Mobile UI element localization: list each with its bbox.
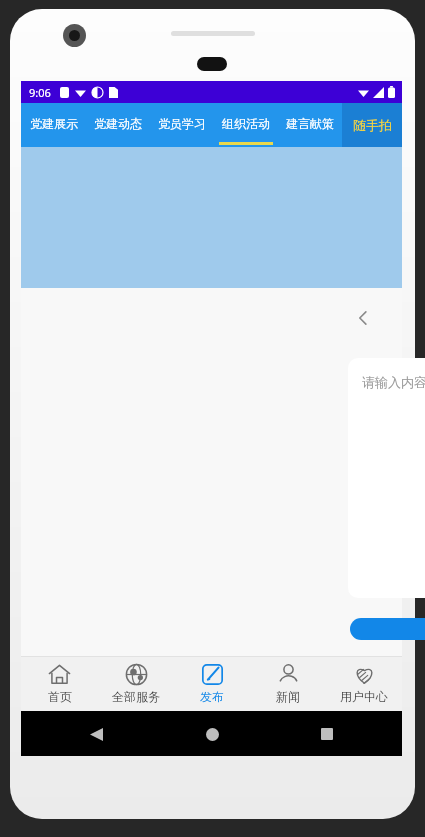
staticText: 随手拍 [353, 117, 392, 133]
staticText: 用户中心 [340, 689, 388, 704]
button[interactable]: Home [197, 719, 227, 749]
button[interactable]: Recents [312, 719, 342, 749]
button[interactable]: 党员学习 [150, 103, 214, 147]
button[interactable] [350, 618, 425, 640]
button[interactable]: 组织活动 [214, 103, 278, 147]
staticText: 9:06 [29, 85, 51, 100]
staticText: 建言献策 [286, 116, 334, 131]
button[interactable]: 首页 [21, 656, 98, 711]
button[interactable]: Back [81, 719, 111, 749]
staticText: 党建展示 [30, 116, 78, 131]
staticText: 新闻 [276, 689, 300, 704]
button[interactable]: 用户中心 [326, 656, 402, 711]
button[interactable]: 党建展示 [21, 103, 86, 147]
button[interactable]: 新闻 [250, 656, 326, 711]
staticText: 组织活动 [222, 116, 270, 131]
staticText: 党员学习 [158, 116, 206, 131]
button[interactable]: 建言献策 [278, 103, 342, 147]
button[interactable]: 全部服务 [98, 656, 174, 711]
button[interactable]: 请输入内容 [348, 358, 425, 598]
staticText: 请输入内容 [362, 374, 425, 390]
button[interactable]: 随手拍 [342, 103, 402, 147]
staticText: 首页 [48, 689, 72, 704]
staticText: 发布 [200, 689, 224, 704]
button[interactable]: 党建动态 [86, 103, 150, 147]
button[interactable]: 发布 [174, 656, 250, 711]
staticText: 全部服务 [112, 689, 160, 704]
staticText: 党建动态 [94, 116, 142, 131]
button[interactable]: Back [346, 301, 380, 335]
